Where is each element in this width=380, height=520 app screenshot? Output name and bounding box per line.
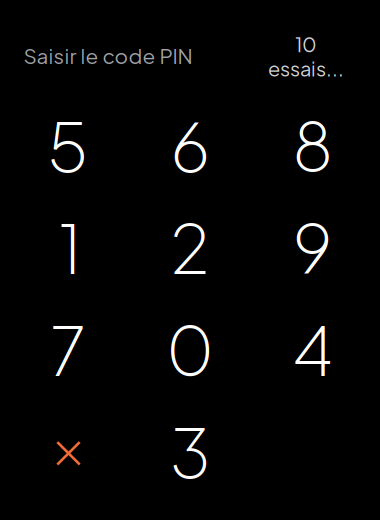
staticText: 4: [293, 307, 333, 391]
staticText: 9: [293, 205, 332, 289]
button[interactable]: 1: [7, 196, 129, 297]
button[interactable]: 0: [129, 298, 251, 399]
staticText: 8: [293, 103, 333, 187]
button[interactable]: Delete: [7, 400, 129, 501]
button[interactable]: 4: [251, 298, 374, 399]
button[interactable]: 3: [129, 400, 251, 501]
button[interactable]: 9: [251, 196, 374, 297]
button[interactable]: 6: [129, 94, 251, 195]
staticText: 6: [171, 103, 210, 187]
button[interactable]: 5: [7, 94, 129, 195]
staticText: Saisir le code PIN: [23, 42, 192, 68]
button[interactable]: 7: [7, 298, 129, 399]
staticText: 7: [50, 307, 85, 391]
button[interactable]: 8: [251, 94, 374, 195]
staticText: 0: [166, 307, 214, 391]
staticText: 10: [295, 32, 317, 57]
staticText: 3: [170, 409, 210, 493]
staticText: 2: [171, 205, 210, 289]
staticText: 1: [59, 205, 82, 289]
staticText: 5: [47, 103, 88, 187]
button[interactable]: 2: [129, 196, 251, 297]
staticText: essais...: [268, 56, 344, 81]
